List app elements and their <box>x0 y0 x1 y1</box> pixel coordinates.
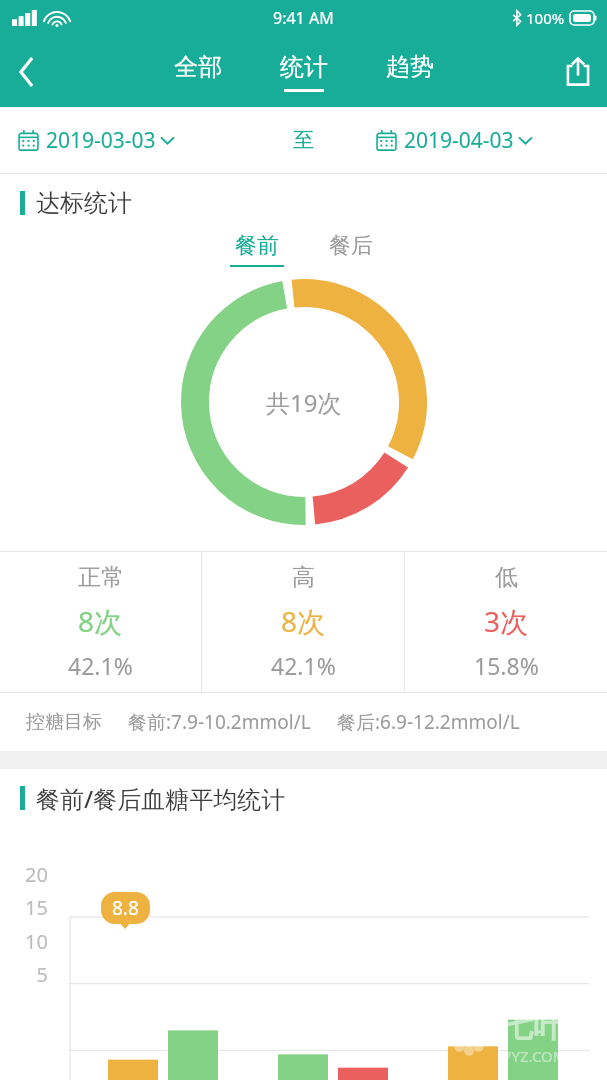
staticText: 15 <box>18 894 48 921</box>
staticText: 15.8% <box>474 650 539 681</box>
staticText: 2019-04-03 <box>404 126 514 155</box>
button[interactable]: Share <box>549 43 607 101</box>
staticText: 8次 <box>78 602 123 640</box>
staticText: 20 <box>18 861 48 888</box>
staticText: 低 <box>495 563 518 592</box>
button[interactable]: 2019-04-03 <box>376 126 607 155</box>
staticText: 餐前/餐后血糖平均统计 <box>36 782 286 815</box>
button[interactable]: Back <box>0 45 54 99</box>
staticText: 2019-03-03 <box>46 126 156 155</box>
button[interactable]: 餐后 <box>324 232 378 267</box>
staticText: 7YZ.COM <box>503 1046 567 1066</box>
staticText: 5 <box>18 961 48 988</box>
staticText: 餐后:6.9-12.2mmol/L <box>337 709 520 735</box>
staticText: 全部 <box>174 52 222 82</box>
staticText: 高 <box>292 563 315 592</box>
staticText: 42.1% <box>271 650 336 681</box>
staticText: 控糖目标 <box>26 710 102 734</box>
button[interactable]: 统计 <box>276 52 332 92</box>
staticText: 共19次 <box>266 386 342 419</box>
button[interactable]: 餐前 <box>230 232 284 267</box>
staticText: 达标统计 <box>36 188 132 218</box>
button[interactable]: 2019-03-03 <box>18 126 293 155</box>
button[interactable]: 趋势 <box>382 52 438 92</box>
staticText: 餐前:7.9-10.2mmol/L <box>128 709 311 735</box>
staticText: 统计 <box>280 52 328 82</box>
button[interactable]: 全部 <box>170 52 226 92</box>
staticText: 8.8 <box>112 895 139 921</box>
staticText: 七叶子 <box>503 1008 593 1046</box>
button[interactable]: 低 <box>405 552 607 692</box>
staticText: 8次 <box>281 602 326 640</box>
staticText: 10 <box>18 928 48 955</box>
staticText: 至 <box>293 127 314 153</box>
staticText: 100% <box>526 8 565 28</box>
staticText: 42.1% <box>68 650 133 681</box>
staticText: 正常 <box>78 563 124 592</box>
button[interactable]: 高 <box>202 552 404 692</box>
staticText: 9:41 AM <box>273 7 334 29</box>
staticText: 餐前 <box>235 232 279 260</box>
button[interactable]: 正常 <box>0 552 201 692</box>
staticText: 餐后 <box>329 232 373 260</box>
staticText: 3次 <box>484 602 529 640</box>
staticText: 趋势 <box>386 52 434 82</box>
